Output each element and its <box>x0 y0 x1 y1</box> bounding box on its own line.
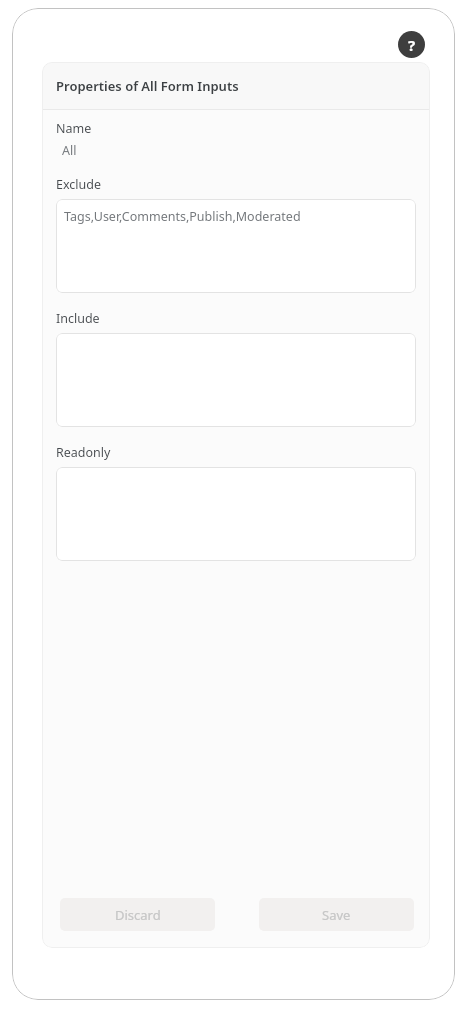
staticText: Tags,User,Comments,Publish,Moderated <box>64 208 301 225</box>
staticText: Save <box>322 906 351 924</box>
staticText: Readonly <box>56 444 111 461</box>
staticText: Properties of All Form Inputs <box>56 77 239 95</box>
button[interactable]: Discard <box>60 898 215 931</box>
staticText: Include <box>56 310 100 327</box>
staticText: Discard <box>115 906 161 924</box>
button[interactable]: Help <box>398 31 425 58</box>
staticText: ? <box>408 35 416 55</box>
button[interactable]: Tags,User,Comments,Publish,Moderated <box>56 199 416 293</box>
staticText: Name <box>56 120 92 137</box>
button[interactable]: Save <box>259 898 414 931</box>
staticText: Exclude <box>56 176 102 193</box>
button[interactable] <box>56 467 416 561</box>
button[interactable] <box>56 333 416 427</box>
staticText: All <box>62 142 77 159</box>
